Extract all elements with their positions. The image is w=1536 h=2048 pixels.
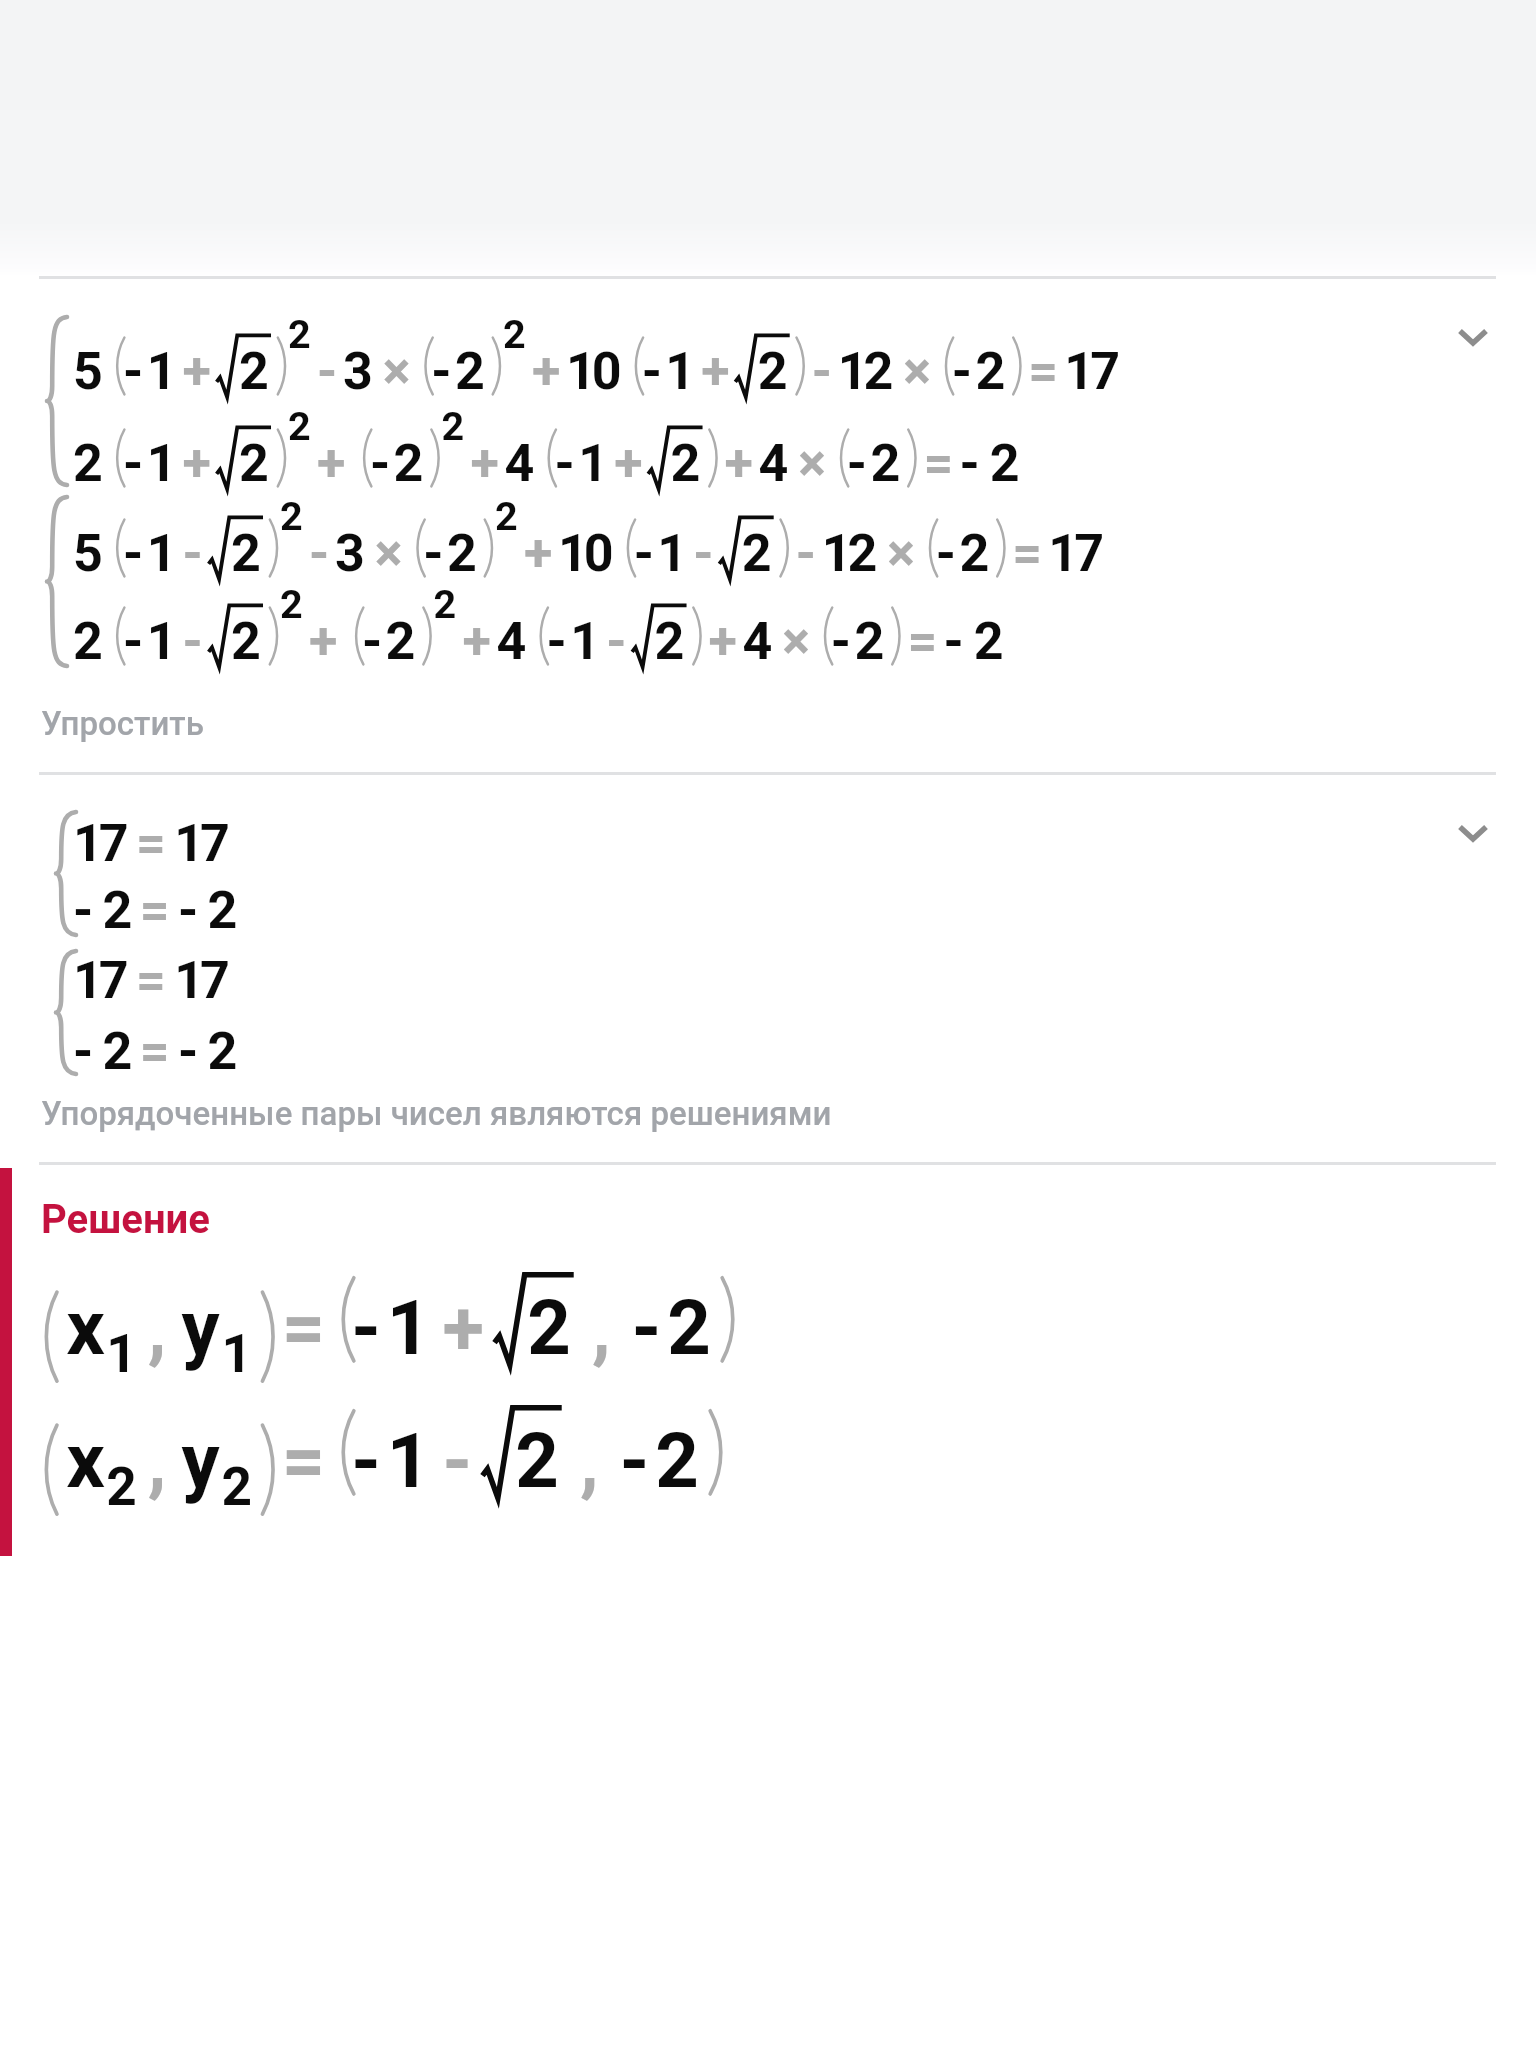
staticText: Упорядоченные пары чисел являются решени… xyxy=(41,1094,832,1133)
button[interactable]: Шаг: Упростить xyxy=(0,279,1536,772)
button[interactable]: Свернуть шаг xyxy=(1437,301,1509,373)
button[interactable]: Шаг: Упорядоченные пары чисел являются р… xyxy=(0,775,1536,1162)
staticText: Решение xyxy=(41,1196,210,1243)
button[interactable]: Свернуть шаг xyxy=(1437,797,1509,869)
staticText: Упростить xyxy=(41,704,204,743)
button[interactable]: Решение xyxy=(0,1165,1536,1565)
